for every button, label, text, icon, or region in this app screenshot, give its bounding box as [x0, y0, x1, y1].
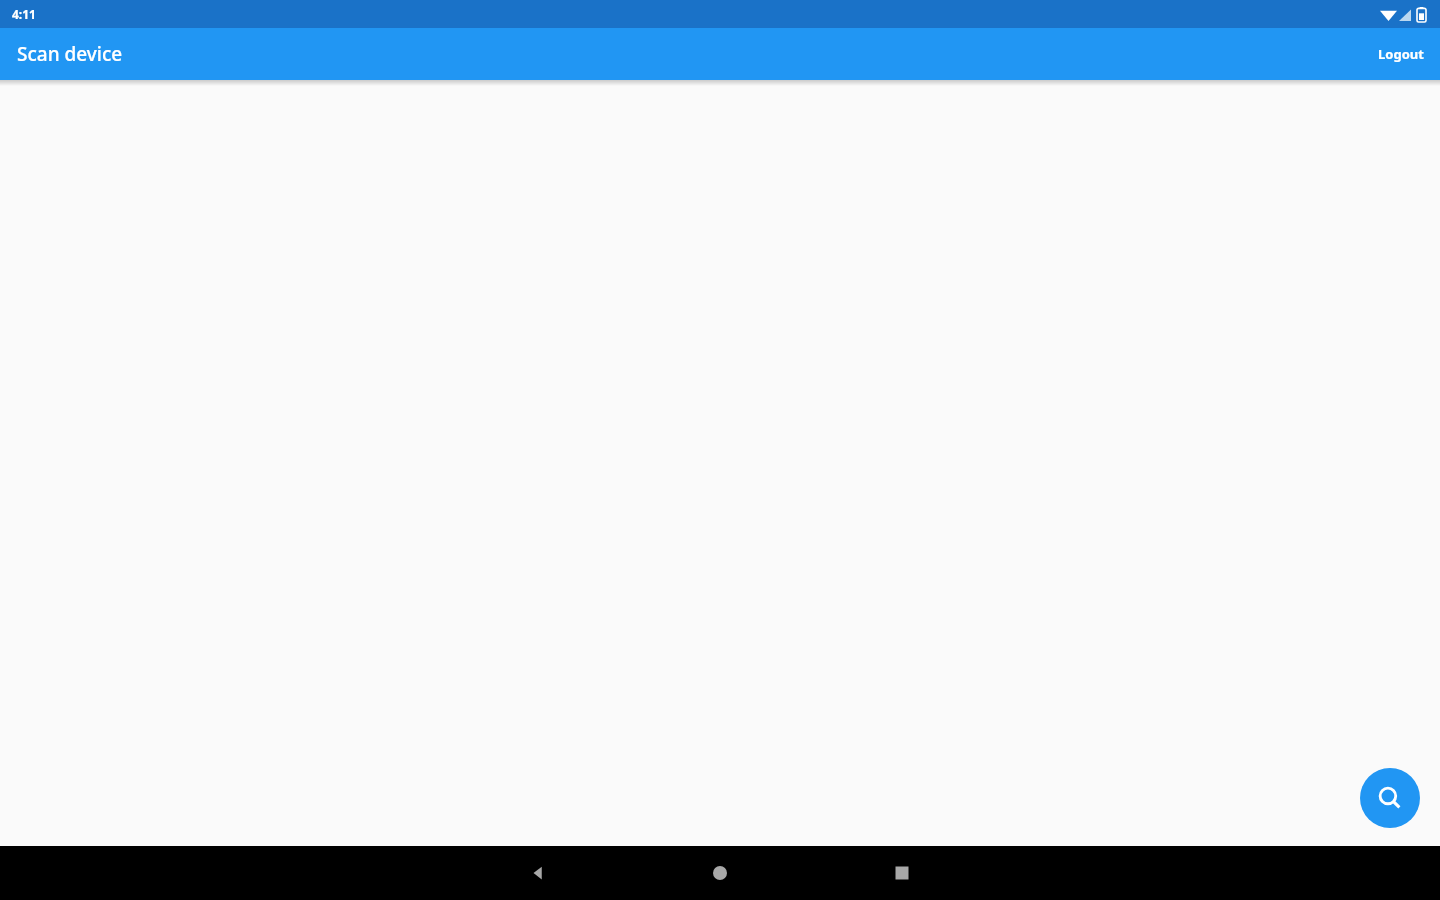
staticText: Scan device: [17, 41, 123, 67]
staticText: 4:11: [12, 6, 36, 22]
button[interactable]: Scan: [1360, 768, 1420, 828]
staticText: Logout: [1378, 45, 1424, 63]
button[interactable]: Recent apps: [882, 861, 922, 885]
button[interactable]: Back: [518, 861, 558, 885]
button[interactable]: Home: [700, 861, 740, 885]
button[interactable]: Logout: [1362, 35, 1440, 73]
